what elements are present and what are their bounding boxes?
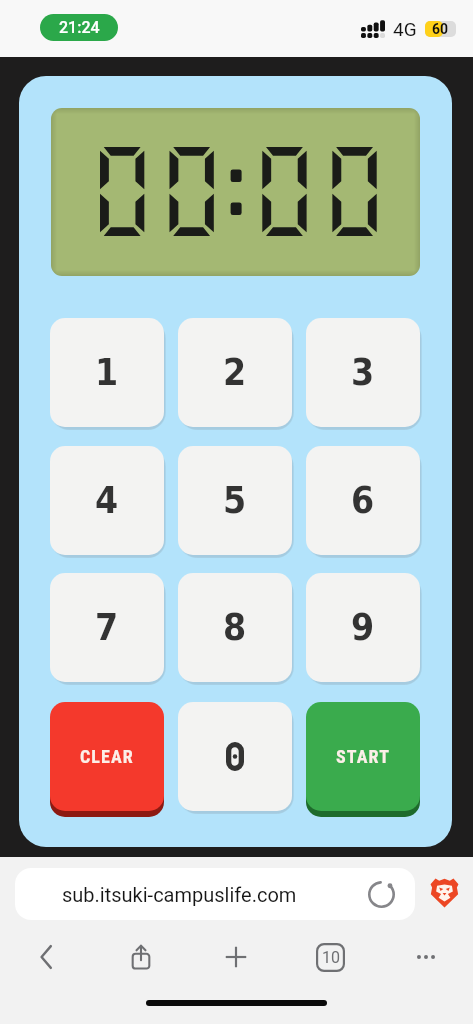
button[interactable]: CLEAR xyxy=(50,702,164,811)
staticText: 7 xyxy=(95,606,119,649)
button[interactable]: sub.itsuki-campuslife.com xyxy=(15,868,415,920)
staticText: START xyxy=(336,746,391,767)
button[interactable]: More options xyxy=(378,936,473,978)
staticText: sub.itsuki-campuslife.com xyxy=(62,883,297,906)
staticText: 3 xyxy=(351,351,375,394)
staticText: 5 xyxy=(223,479,247,522)
button[interactable]: 8 xyxy=(178,573,292,682)
button[interactable]: Brave shields xyxy=(429,877,460,908)
button[interactable]: Tabs xyxy=(283,936,378,978)
button[interactable]: 3 xyxy=(306,318,420,427)
staticText: 4 xyxy=(95,479,119,522)
button[interactable]: Share xyxy=(94,936,188,978)
staticText: 21:24 xyxy=(59,18,100,37)
button[interactable]: Reload xyxy=(368,881,395,908)
button[interactable] xyxy=(178,702,292,811)
staticText: 60 xyxy=(432,21,449,37)
staticText: 8 xyxy=(223,606,247,649)
button[interactable]: 5 xyxy=(178,446,292,555)
staticText: 4G xyxy=(393,18,417,40)
button[interactable]: 7 xyxy=(50,573,164,682)
staticText: 2 xyxy=(223,351,247,394)
button[interactable]: START xyxy=(306,702,420,811)
staticText: 6 xyxy=(351,479,375,522)
button[interactable]: 2 xyxy=(178,318,292,427)
button[interactable]: 6 xyxy=(306,446,420,555)
button[interactable]: New tab xyxy=(188,936,283,978)
button[interactable]: 4 xyxy=(50,446,164,555)
staticText: CLEAR xyxy=(80,746,134,767)
button[interactable]: Back xyxy=(0,936,94,978)
button[interactable]: 9 xyxy=(306,573,420,682)
button[interactable]: 1 xyxy=(50,318,164,427)
staticText: 10 xyxy=(322,948,340,967)
staticText: 9 xyxy=(351,606,375,649)
staticText: 1 xyxy=(95,351,119,394)
